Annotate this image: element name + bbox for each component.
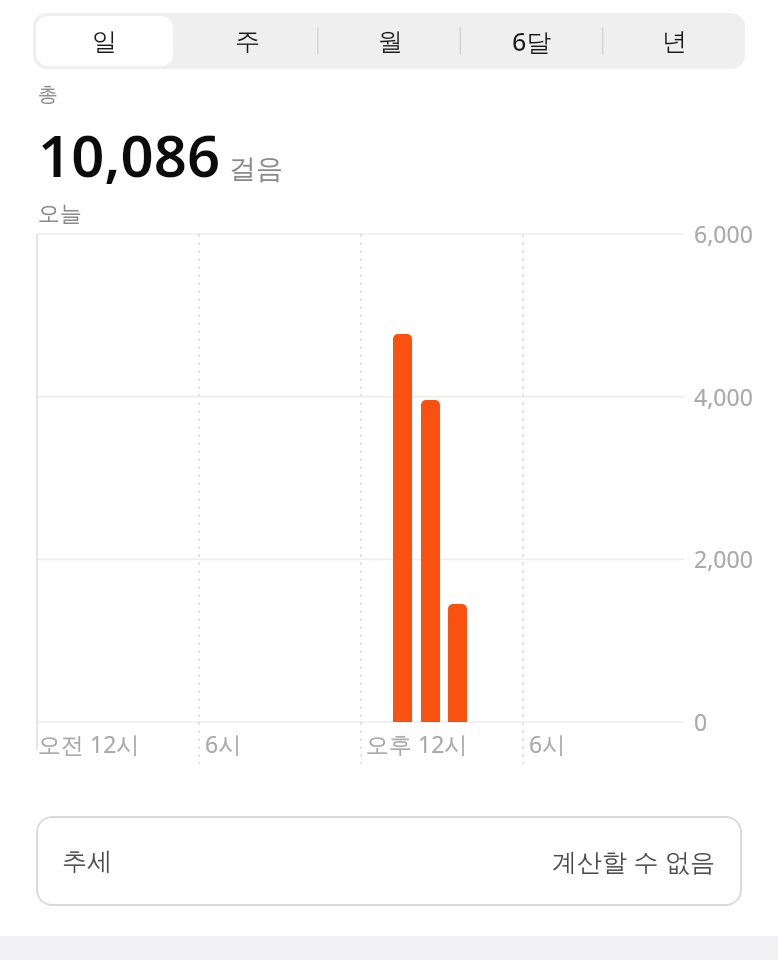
staticText: 6,000 [694,218,753,249]
staticText: 걸음 [229,152,283,186]
staticText: 총 [38,82,58,107]
button[interactable]: 일 [36,16,173,66]
staticText: 일 [92,26,117,57]
staticText: 6시 [205,728,242,759]
staticText: 0 [694,706,708,737]
button[interactable]: 추세 [36,816,742,906]
staticText: 오늘 [38,200,82,228]
staticText: 추세 [62,846,112,877]
button[interactable]: 년 [606,16,742,66]
staticText: 10,086 [38,115,221,194]
staticText: 계산할 수 없음 [552,844,716,878]
button[interactable]: 주 [179,16,316,66]
staticText: 오전 12시 [38,728,140,759]
staticText: 6달 [512,24,552,58]
staticText: 2,000 [694,543,753,574]
staticText: 년 [662,26,687,57]
staticText: 오후 12시 [366,728,468,759]
staticText: 6시 [529,728,566,759]
button[interactable]: 6달 [464,16,600,66]
button[interactable]: 월 [322,16,458,66]
staticText: 4,000 [694,381,753,412]
staticText: 주 [235,26,260,57]
staticText: 월 [378,26,403,57]
